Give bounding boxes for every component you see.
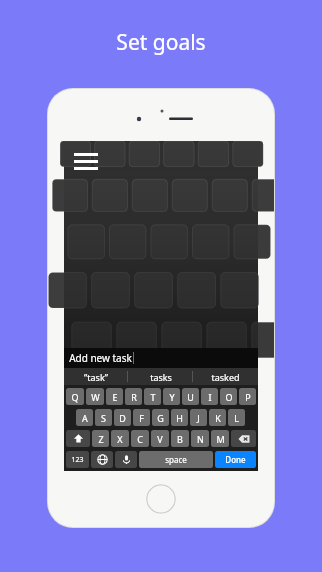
staticText: 123	[71, 455, 84, 465]
staticText: I	[208, 391, 212, 403]
staticText: B	[177, 433, 183, 445]
staticText: Done	[225, 454, 246, 465]
button[interactable]: space	[139, 451, 213, 468]
staticText: C	[137, 433, 143, 445]
staticText: tasked	[211, 371, 240, 383]
button[interactable]: Z	[92, 430, 109, 447]
button[interactable]: Add new task	[64, 348, 258, 368]
button[interactable]: J	[190, 409, 207, 426]
button[interactable]: Dictation	[115, 451, 137, 468]
button[interactable]: Menu	[72, 151, 100, 172]
staticText: K	[215, 412, 221, 424]
button[interactable]: N	[191, 430, 209, 447]
button[interactable]: G	[152, 409, 169, 426]
button[interactable]: tasks	[128, 368, 193, 385]
staticText: N	[197, 433, 204, 445]
button[interactable]: Backspace	[231, 430, 256, 447]
button[interactable]: S	[95, 409, 112, 426]
button[interactable]: C	[131, 430, 149, 447]
staticText: T	[150, 391, 156, 403]
staticText: Add new task	[69, 351, 132, 365]
button[interactable]: Shift	[66, 430, 90, 447]
button[interactable]: W	[86, 388, 104, 405]
button[interactable]: A	[76, 409, 93, 426]
button[interactable]: Done	[215, 451, 256, 468]
button[interactable]: 123	[66, 451, 89, 468]
button[interactable]: R	[125, 388, 142, 405]
button[interactable]: E	[106, 388, 123, 405]
button[interactable]: K	[209, 409, 226, 426]
button[interactable]: H	[171, 409, 188, 426]
staticText: O	[225, 391, 233, 403]
staticText: Set goals	[116, 28, 206, 57]
button[interactable]: Emoji / language	[91, 451, 113, 468]
button[interactable]: Home	[146, 484, 176, 514]
staticText: Y	[169, 391, 175, 403]
staticText: Z	[98, 433, 104, 445]
staticText: Q	[71, 391, 79, 403]
button[interactable]: O	[220, 388, 237, 405]
button[interactable]: U	[182, 388, 199, 405]
button[interactable]: F	[133, 409, 150, 426]
staticText: R	[131, 391, 137, 403]
staticText: J	[197, 412, 200, 424]
button[interactable]: X	[111, 430, 129, 447]
button[interactable]: V	[151, 430, 169, 447]
staticText: U	[187, 391, 194, 403]
staticText: M	[216, 433, 225, 445]
staticText: P	[245, 391, 251, 403]
button[interactable]: I	[201, 388, 218, 405]
staticText: D	[119, 412, 126, 424]
button[interactable]: P	[239, 388, 256, 405]
button[interactable]: tasked	[193, 368, 258, 385]
staticText: W	[91, 391, 100, 403]
staticText: G	[157, 412, 164, 424]
button[interactable]: M	[211, 430, 229, 447]
staticText: space	[165, 454, 187, 465]
button[interactable]: “task”	[64, 368, 128, 385]
button[interactable]: L	[228, 409, 245, 426]
button[interactable]: Y	[163, 388, 180, 405]
button[interactable]: Q	[66, 388, 84, 405]
staticText: A	[82, 412, 88, 424]
staticText: L	[234, 412, 239, 424]
staticText: F	[139, 412, 144, 424]
staticText: “task”	[84, 371, 108, 383]
button[interactable]: B	[171, 430, 189, 447]
staticText: V	[157, 433, 163, 445]
staticText: X	[117, 433, 123, 445]
button[interactable]: D	[114, 409, 131, 426]
staticText: H	[176, 412, 183, 424]
staticText: E	[112, 391, 118, 403]
staticText: S	[101, 412, 106, 424]
button[interactable]: T	[144, 388, 161, 405]
staticText: tasks	[150, 371, 172, 383]
